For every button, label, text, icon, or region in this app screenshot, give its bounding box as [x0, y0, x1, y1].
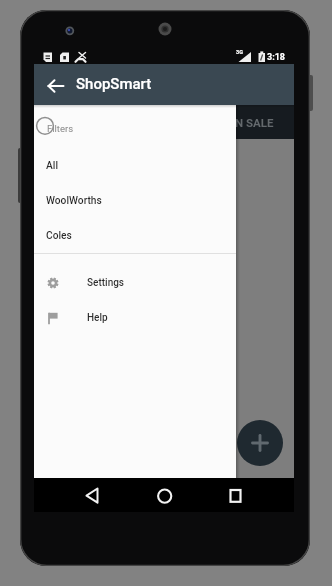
staticText: Settings — [87, 277, 125, 289]
button[interactable]: ON SALE — [34, 105, 294, 140]
button[interactable]: Settings — [34, 267, 236, 298]
button[interactable] — [42, 72, 70, 98]
button[interactable]: All — [34, 150, 236, 181]
staticText: Coles — [46, 230, 72, 242]
staticText: ON SALE — [227, 116, 274, 129]
button[interactable]: WoolWorths — [34, 185, 236, 216]
staticText: ShopSmart — [76, 75, 152, 93]
staticText: 3:18 — [267, 52, 286, 63]
button[interactable] — [78, 481, 106, 509]
staticText: WoolWorths — [46, 195, 102, 207]
button[interactable]: Help — [34, 302, 236, 333]
button[interactable] — [237, 420, 283, 466]
button[interactable]: Coles — [34, 220, 236, 251]
button[interactable] — [151, 481, 179, 509]
staticText: Filters — [47, 123, 74, 134]
staticText: Help — [87, 312, 108, 324]
staticText: All — [46, 160, 58, 172]
staticText: 3G — [236, 49, 243, 55]
button[interactable] — [223, 481, 251, 509]
